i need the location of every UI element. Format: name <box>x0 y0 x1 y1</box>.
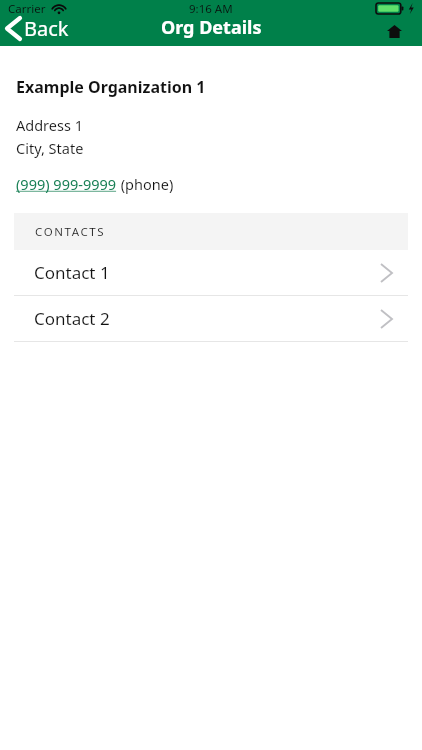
button[interactable]: Home <box>387 25 402 38</box>
staticText: Org Details <box>161 15 262 40</box>
staticText: Example Organization 1 <box>16 76 206 98</box>
button[interactable]: (999) 999-9999 <box>16 174 117 194</box>
staticText: Contact 1 <box>34 261 110 284</box>
button[interactable]: Back <box>0 15 69 42</box>
button[interactable]: Contact 2 <box>0 296 422 341</box>
staticText: Back <box>24 15 69 42</box>
staticText: 9:16 AM <box>189 1 233 17</box>
staticText: City, State <box>16 138 84 158</box>
staticText: (phone) <box>117 174 174 194</box>
staticText: Carrier <box>8 1 46 17</box>
staticText: CONTACTS <box>35 224 106 240</box>
staticText: Address 1 <box>16 115 83 135</box>
staticText: (999) 999-9999 <box>16 174 117 194</box>
button[interactable]: Contact 1 <box>0 250 422 295</box>
staticText: Contact 2 <box>34 307 110 330</box>
